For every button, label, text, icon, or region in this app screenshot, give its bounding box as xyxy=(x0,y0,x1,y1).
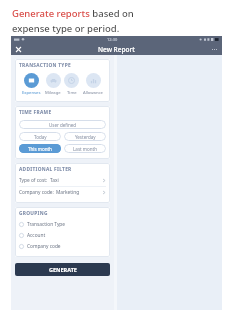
staticText: Last month xyxy=(73,146,97,152)
button[interactable]: Account xyxy=(19,230,106,241)
button[interactable]: Mileage xyxy=(44,73,62,96)
button[interactable]: Company code: xyxy=(19,187,106,198)
staticText: Type of cost: xyxy=(19,177,48,184)
button[interactable]: More options xyxy=(209,44,220,55)
button[interactable]: Yesterday xyxy=(64,132,106,141)
staticText: GROUPING xyxy=(19,210,48,217)
staticText: Account xyxy=(27,232,46,239)
staticText: 12:30 xyxy=(107,37,118,42)
staticText: GENERATE xyxy=(49,266,77,273)
button[interactable]: Company code xyxy=(19,241,106,252)
button[interactable]: GENERATE xyxy=(15,263,110,276)
staticText: expense type or period. xyxy=(12,22,120,35)
staticText: Company code: xyxy=(19,189,54,196)
button[interactable]: Transaction Type xyxy=(19,219,106,230)
button[interactable]: Expenses xyxy=(21,73,42,96)
staticText: TRANSACTION TYPE xyxy=(19,62,71,69)
button[interactable]: This month xyxy=(19,144,61,153)
staticText: Allowance xyxy=(83,90,103,96)
button[interactable]: Close xyxy=(13,44,24,55)
staticText: User defined xyxy=(49,122,77,128)
staticText: ADDITIONAL FILTER xyxy=(19,166,72,173)
staticText: New Report xyxy=(98,45,135,54)
staticText: Taxi xyxy=(50,177,59,184)
button[interactable]: Time xyxy=(63,73,80,96)
staticText: Today xyxy=(34,134,47,140)
staticText: Transaction Type xyxy=(27,221,66,228)
button[interactable]: User defined xyxy=(19,120,106,129)
staticText: This month xyxy=(28,146,52,152)
button[interactable]: Allowance xyxy=(82,73,104,96)
staticText: Time xyxy=(67,90,77,96)
button[interactable]: Last month xyxy=(64,144,106,153)
button[interactable]: Today xyxy=(19,132,61,141)
staticText: Expenses xyxy=(22,90,41,96)
staticText: Yesterday xyxy=(75,134,96,140)
staticText: Generate reports based on xyxy=(12,7,134,20)
staticText: Marketing xyxy=(56,189,80,196)
staticText: TIME FRAME xyxy=(19,109,52,116)
staticText: Mileage xyxy=(45,90,61,96)
button[interactable]: Type of cost: xyxy=(19,175,106,186)
staticText: Company code xyxy=(27,243,61,250)
